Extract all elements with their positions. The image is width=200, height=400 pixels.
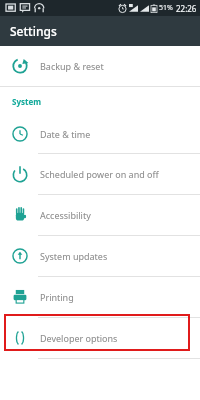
button[interactable]: Developer options [0, 318, 200, 358]
button[interactable]: Printing [0, 277, 200, 317]
staticText: 51% [159, 3, 173, 13]
staticText: Scheduled power on and off [40, 168, 159, 180]
button[interactable]: Backup & reset [0, 46, 200, 86]
button[interactable]: Scheduled power on and off [0, 154, 200, 194]
staticText: Date & time [40, 128, 91, 140]
staticText: System updates [40, 250, 108, 262]
staticText: Printing [40, 291, 74, 303]
staticText: Settings [10, 23, 57, 39]
staticText: Backup & reset [40, 60, 104, 72]
button[interactable]: System updates [0, 236, 200, 276]
staticText: 22:26 [176, 3, 197, 14]
staticText: Developer options [40, 332, 118, 344]
button[interactable]: Date & time [0, 115, 200, 153]
staticText: System [12, 96, 42, 107]
staticText: Accessibility [40, 209, 91, 221]
button[interactable]: Accessibility [0, 195, 200, 235]
